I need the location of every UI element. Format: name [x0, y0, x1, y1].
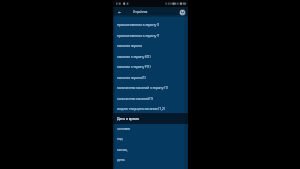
staticText: количество касаний(1): [117, 96, 153, 101]
staticText: месяц: [117, 147, 127, 152]
staticText: касания экрана: [117, 43, 142, 48]
button[interactable]: день: [113, 154, 188, 165]
staticText: Дата и время: [117, 116, 140, 121]
button[interactable]: касания экрана(1): [113, 72, 188, 83]
button[interactable]: касания экрана: [113, 40, 188, 51]
staticText: индекс текущего касания (1,2): [117, 106, 165, 111]
staticText: прикосновения к экрану X: [117, 22, 159, 27]
button[interactable]: год: [113, 133, 188, 144]
staticText: количество касаний к экрану (1): [117, 85, 168, 90]
button[interactable]: прикосновения к экрану Y: [113, 30, 188, 41]
staticText: прикосновения к экрану Y: [117, 33, 159, 38]
button[interactable]: количество касаний(1): [113, 93, 188, 104]
staticText: Устройства: [133, 10, 148, 14]
staticText: человек: [117, 126, 131, 131]
button[interactable]: касания к экрану X(1): [113, 51, 188, 62]
button[interactable]: индекс текущего касания (1,2): [113, 103, 188, 114]
button[interactable]: месяц: [113, 144, 188, 155]
button[interactable]: касания к экрану Y(1): [113, 61, 188, 72]
button[interactable]: прикосновения к экрану X: [113, 19, 188, 30]
button[interactable]: количество касаний к экрану (1): [113, 82, 188, 93]
button[interactable]: человек: [113, 123, 188, 134]
staticText: касания к экрану Y(1): [117, 64, 151, 69]
staticText: касания к экрану X(1): [117, 54, 151, 59]
staticText: год: [117, 136, 123, 141]
staticText: касания экрана(1): [117, 75, 146, 80]
button[interactable]: Back: [116, 9, 123, 16]
button[interactable]: Account: [178, 8, 186, 16]
staticText: день: [117, 157, 125, 162]
